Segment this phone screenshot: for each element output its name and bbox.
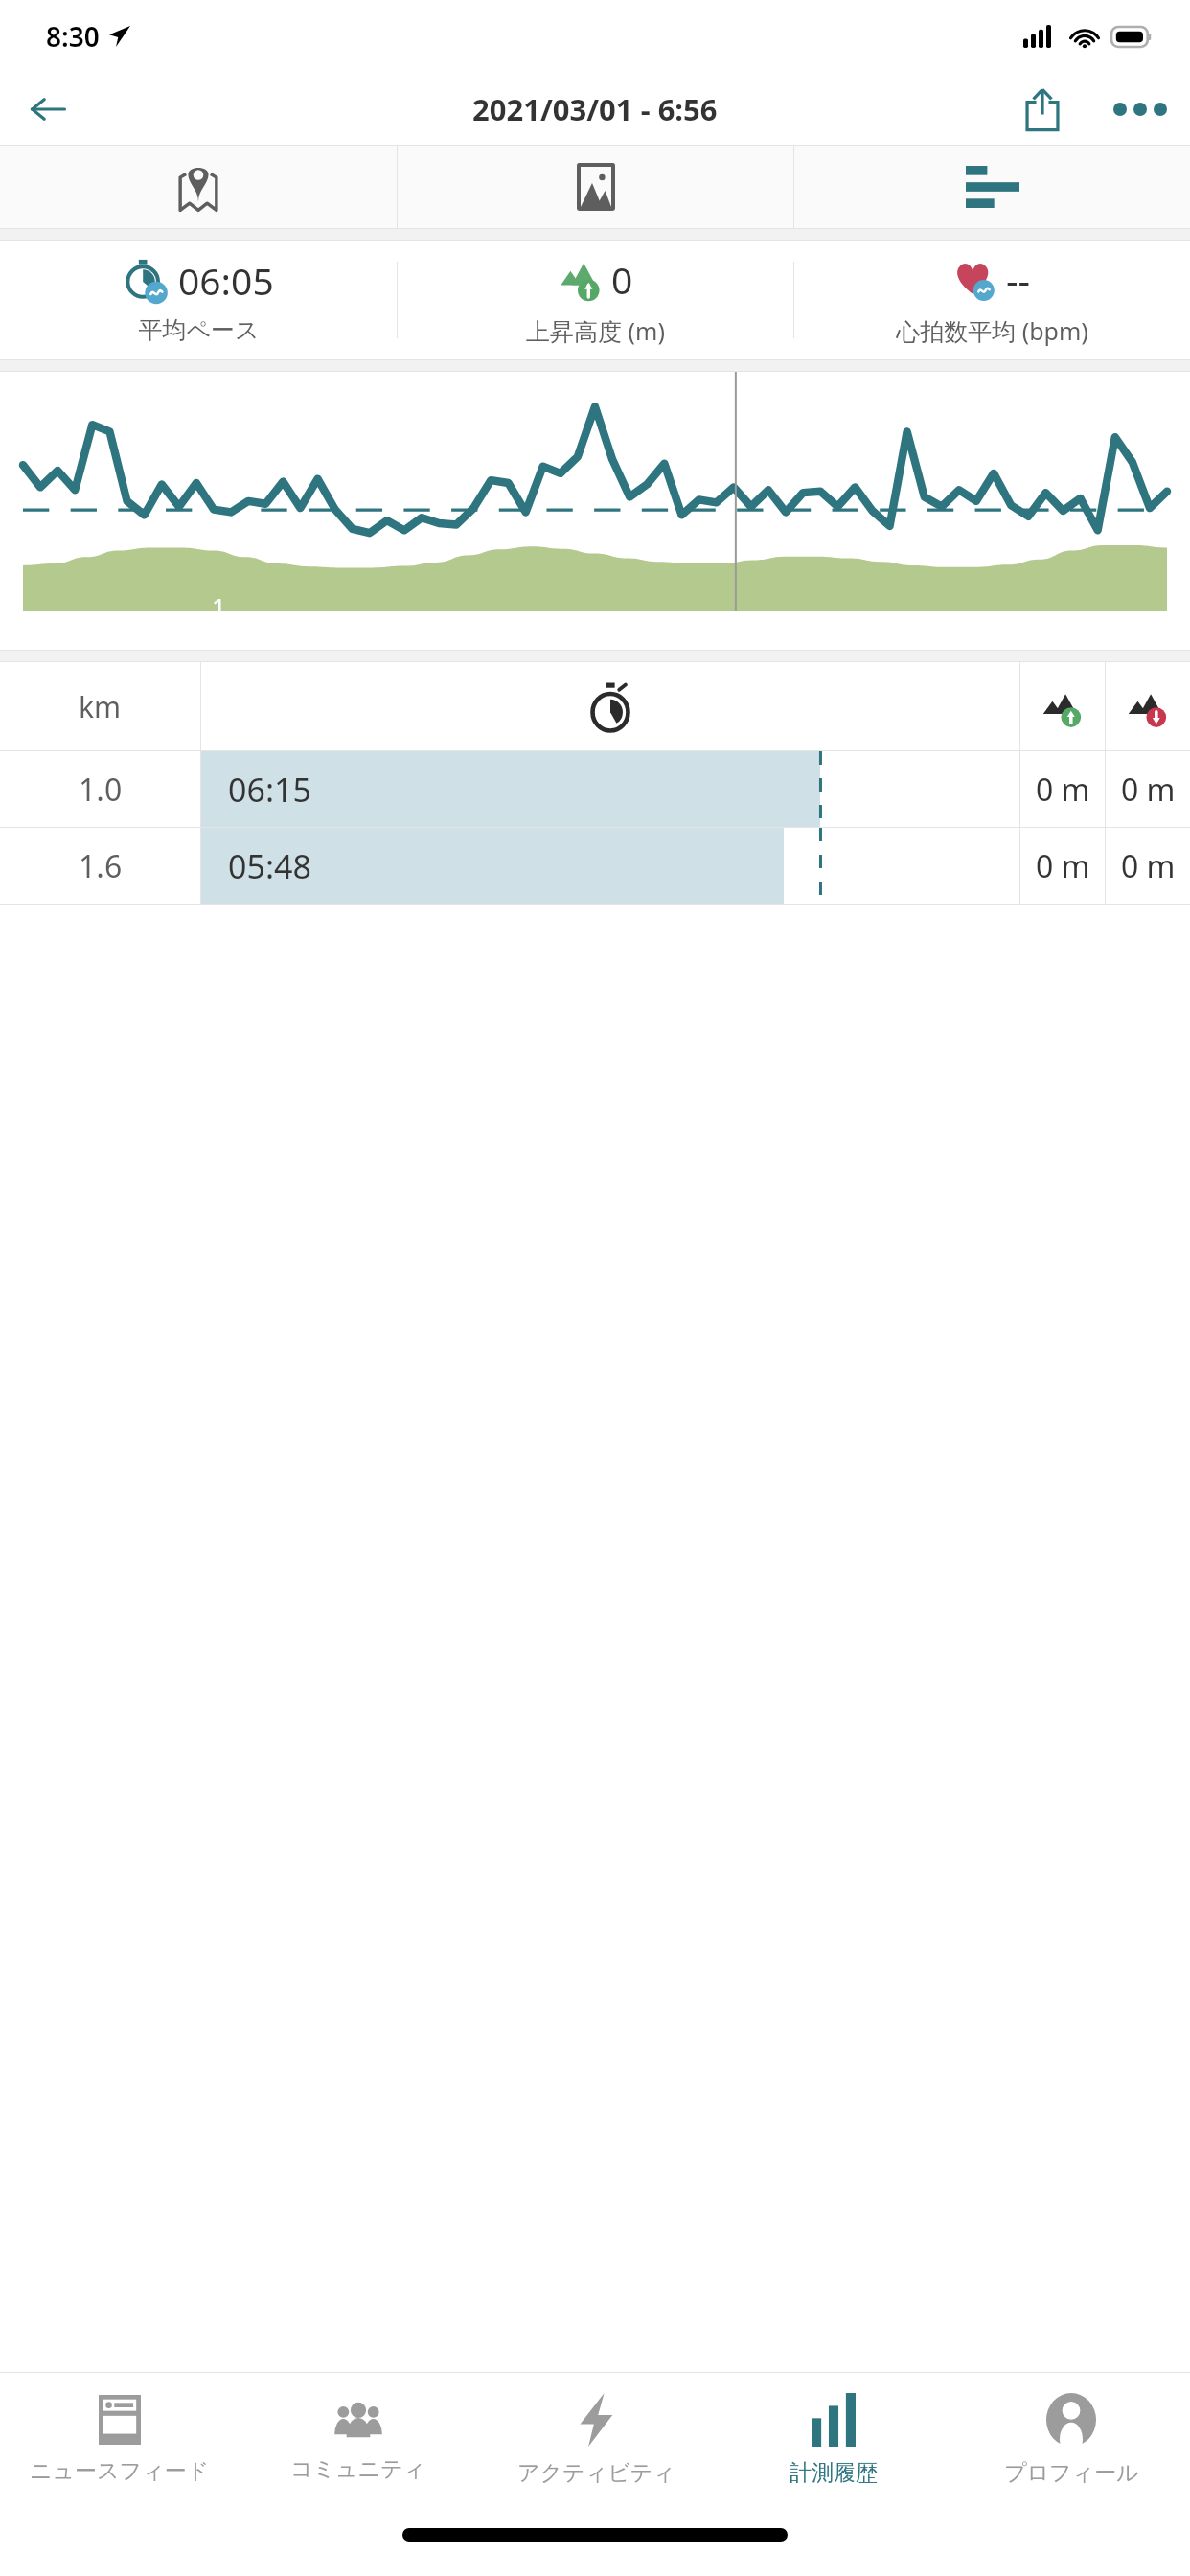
- button[interactable]: 1: [0, 372, 1190, 650]
- staticText: 0 m: [1036, 769, 1090, 811]
- staticText: 計測履歴: [790, 2459, 878, 2487]
- staticText: 0 m: [1036, 845, 1090, 887]
- staticText: 0 m: [1121, 845, 1176, 887]
- button[interactable]: コミュニティ: [239, 2373, 477, 2507]
- staticText: 1.6: [79, 845, 123, 887]
- staticText: コミュニティ: [290, 2455, 426, 2483]
- staticText: 平均ペース: [138, 315, 260, 345]
- staticText: 0 m: [1121, 769, 1176, 811]
- staticText: 0: [611, 254, 633, 305]
- button[interactable]: 0: [398, 241, 793, 359]
- button[interactable]: Back: [0, 73, 96, 145]
- button[interactable]: Map: [0, 146, 397, 228]
- staticText: 心拍数平均 (bpm): [896, 314, 1088, 347]
- button[interactable]: --: [794, 241, 1190, 359]
- staticText: km: [79, 687, 122, 726]
- button[interactable]: プロフィール: [952, 2373, 1190, 2507]
- staticText: 06:15: [228, 768, 311, 812]
- button[interactable]: Statistics: [794, 146, 1190, 228]
- button[interactable]: ニュースフィード: [0, 2373, 239, 2507]
- staticText: 8:30: [46, 18, 100, 55]
- button[interactable]: More options: [1090, 73, 1190, 145]
- button[interactable]: 1.6: [0, 828, 1190, 904]
- staticText: 06:05: [178, 255, 274, 306]
- button[interactable]: 1.0: [0, 751, 1190, 827]
- staticText: アクティビティ: [517, 2459, 675, 2487]
- staticText: 2021/03/01 - 6:56: [472, 89, 718, 129]
- staticText: 05:48: [228, 844, 311, 888]
- button[interactable]: アクティビティ: [477, 2373, 715, 2507]
- staticText: 上昇高度 (m): [526, 314, 665, 347]
- button[interactable]: 計測履歴: [715, 2373, 952, 2507]
- button[interactable]: 06:05: [0, 241, 397, 359]
- staticText: プロフィール: [1004, 2459, 1139, 2487]
- button[interactable]: Share: [995, 73, 1090, 145]
- staticText: 1: [212, 589, 226, 623]
- button[interactable]: Photos: [398, 146, 793, 228]
- staticText: 1.0: [79, 769, 123, 811]
- staticText: ニュースフィード: [30, 2457, 210, 2485]
- staticText: --: [1006, 254, 1031, 305]
